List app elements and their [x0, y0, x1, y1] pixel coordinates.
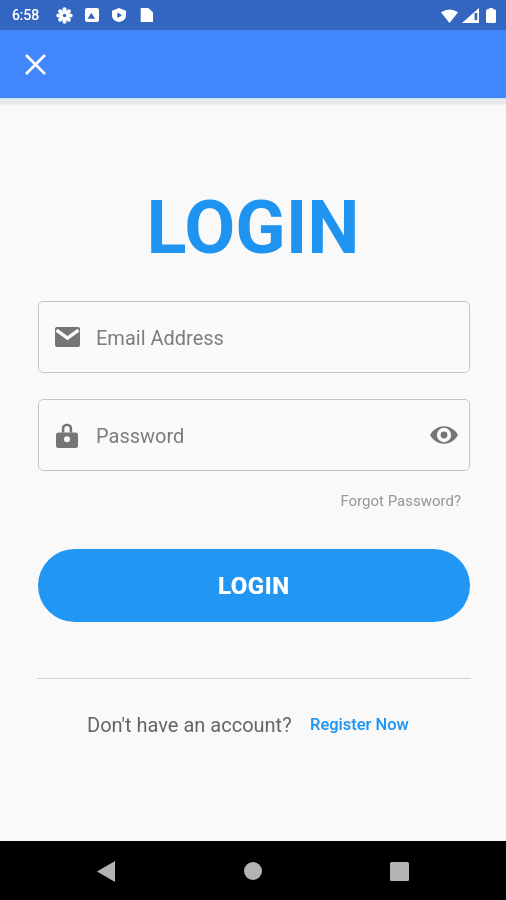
button[interactable]: Email Address	[38, 301, 470, 373]
button[interactable]: Back	[83, 848, 129, 894]
button[interactable]: Recents	[376, 848, 422, 894]
staticText: Don't have an account?	[87, 713, 292, 736]
staticText: 6:58	[12, 7, 39, 23]
button[interactable]: Close	[16, 45, 54, 83]
button[interactable]: Forgot Password?	[340, 492, 461, 510]
staticText: Email Address	[96, 326, 224, 349]
button[interactable]: Password	[38, 399, 470, 471]
button[interactable]: Register Now	[310, 715, 409, 734]
button[interactable]: Show password	[423, 414, 465, 456]
staticText: LOGIN	[0, 184, 506, 271]
staticText: Password	[96, 424, 185, 447]
staticText: LOGIN	[218, 572, 290, 600]
button[interactable]: Home	[230, 848, 276, 894]
button[interactable]: LOGIN	[38, 549, 470, 622]
